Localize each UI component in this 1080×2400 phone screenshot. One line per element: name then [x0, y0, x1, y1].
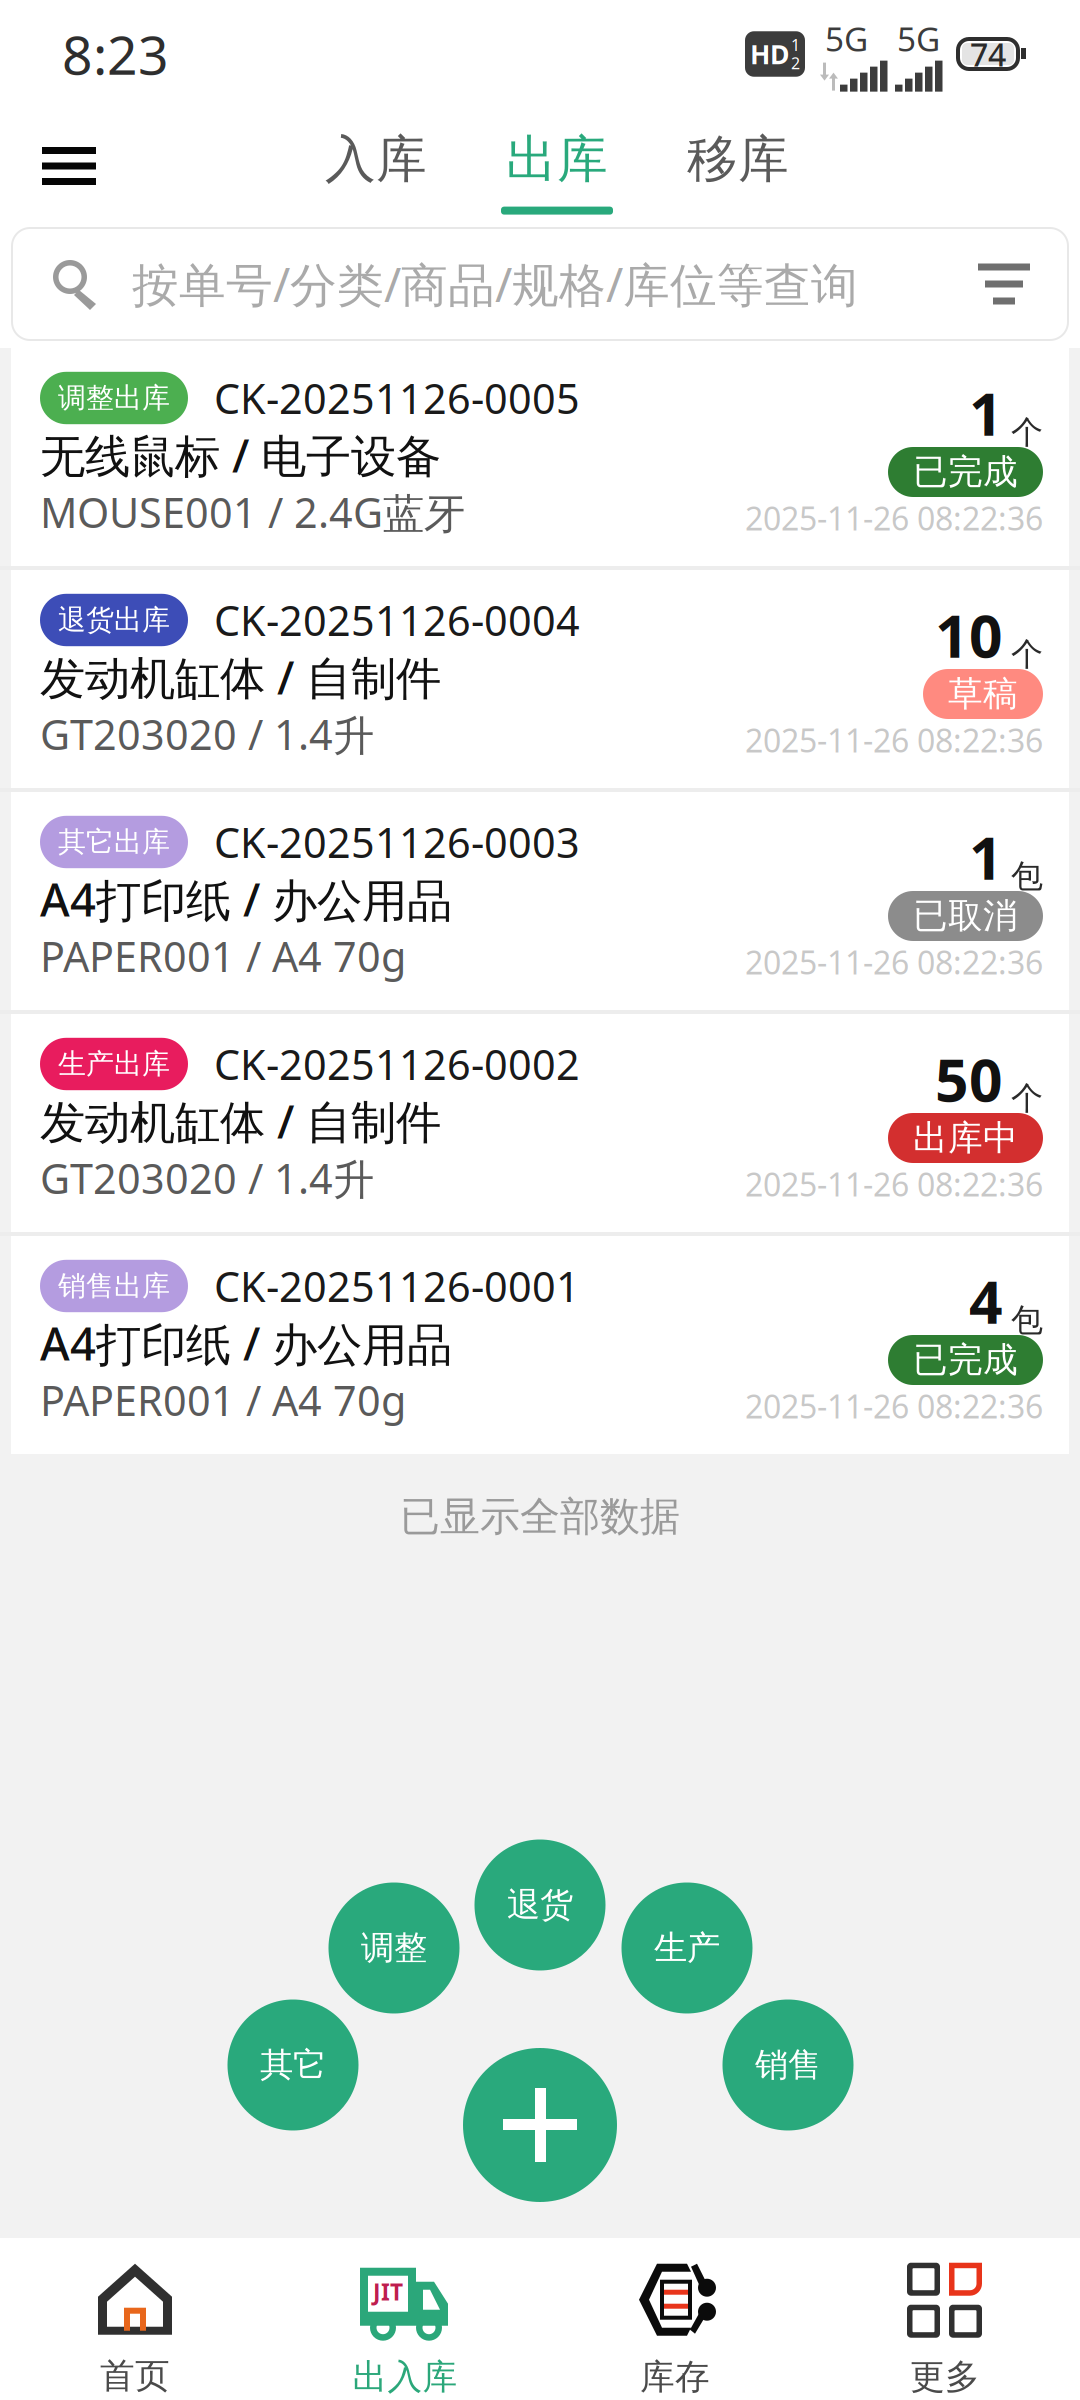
staticText: 1 — [969, 374, 1003, 452]
staticText: CK-20251126-0003 — [214, 815, 580, 869]
staticText: 1 — [791, 34, 800, 55]
staticText: 2025-11-26 08:22:36 — [745, 941, 1043, 983]
staticText: 调整 — [361, 1927, 427, 1968]
button[interactable]: Filter — [940, 230, 1068, 337]
staticText: 2025-11-26 08:22:36 — [745, 1385, 1043, 1427]
staticText: PAPER001 / A4 70g — [40, 1373, 406, 1427]
staticText: 调整出库 — [58, 381, 170, 415]
staticText: 发动机缸体 / 自制件 — [40, 647, 441, 707]
button[interactable]: 更多 — [810, 2240, 1080, 2398]
staticText: 退货 — [507, 1884, 573, 1925]
staticText: GT203020 / 1.4升 — [40, 706, 374, 761]
staticText: 生产 — [654, 1927, 720, 1968]
staticText: 草稿 — [948, 673, 1018, 715]
staticText: 出库 — [506, 128, 608, 191]
button[interactable]: 其它 — [227, 1999, 358, 2130]
staticText: 包 — [1011, 857, 1043, 896]
staticText: 已显示全部数据 — [400, 1492, 680, 1541]
button[interactable]: 生产出库 — [0, 1014, 1080, 1232]
button[interactable]: 库存 — [540, 2240, 810, 2398]
staticText: 个 — [1011, 1079, 1043, 1118]
button[interactable]: 其它出库 — [0, 792, 1080, 1010]
staticText: 移库 — [687, 128, 789, 191]
staticText: 已完成 — [913, 1339, 1018, 1381]
button[interactable]: 调整出库 — [0, 348, 1080, 566]
staticText: 个 — [1011, 635, 1043, 674]
staticText: 50 — [935, 1040, 1003, 1118]
staticText: HD — [750, 36, 790, 72]
staticText: 按单号/分类/商品/规格/库位等查询 — [132, 253, 858, 315]
staticText: PAPER001 / A4 70g — [40, 929, 406, 983]
button[interactable]: Add — [463, 2048, 617, 2202]
staticText: 4 — [969, 1262, 1003, 1340]
button[interactable]: 移库 — [646, 102, 830, 230]
staticText: CK-20251126-0005 — [214, 371, 580, 425]
button[interactable]: 销售出库 — [0, 1236, 1080, 1454]
button[interactable]: JIT — [270, 2240, 540, 2398]
staticText: 生产出库 — [58, 1047, 170, 1081]
button[interactable]: 退货 — [474, 1839, 605, 1970]
staticText: CK-20251126-0002 — [214, 1037, 580, 1091]
staticText: CK-20251126-0004 — [214, 593, 580, 647]
staticText: JIT — [373, 2277, 403, 2307]
staticText: 无线鼠标 / 电子设备 — [40, 425, 441, 485]
staticText: 74 — [970, 33, 1006, 75]
staticText: 已取消 — [913, 895, 1018, 937]
button[interactable]: 生产 — [621, 1882, 752, 2013]
staticText: 1 — [969, 818, 1003, 896]
staticText: 2025-11-26 08:22:36 — [745, 497, 1043, 539]
staticText: 入库 — [325, 128, 427, 191]
button[interactable]: 退货出库 — [0, 570, 1080, 788]
button[interactable]: 销售 — [722, 1999, 853, 2130]
staticText: 发动机缸体 / 自制件 — [40, 1091, 441, 1151]
button[interactable]: 首页 — [0, 2241, 270, 2397]
staticText: 个 — [1011, 413, 1043, 452]
button[interactable]: Menu — [0, 110, 136, 222]
staticText: 退货出库 — [58, 603, 170, 637]
staticText: 2 — [791, 52, 800, 74]
staticText: 5G — [825, 16, 868, 61]
button[interactable]: 入库 — [284, 102, 468, 230]
staticText: 5G — [897, 16, 940, 61]
staticText: CK-20251126-0001 — [214, 1259, 580, 1313]
staticText: 其它出库 — [58, 825, 170, 859]
staticText: 2025-11-26 08:22:36 — [745, 719, 1043, 761]
staticText: A4打印纸 / 办公用品 — [40, 1313, 452, 1373]
staticText: 首页 — [100, 2355, 170, 2397]
staticText: MOUSE001 / 2.4G蓝牙 — [40, 484, 465, 539]
staticText: 10 — [935, 596, 1003, 674]
staticText: 出库中 — [913, 1117, 1018, 1159]
staticText: 已完成 — [913, 451, 1018, 493]
staticText: 销售出库 — [58, 1269, 170, 1303]
staticText: A4打印纸 / 办公用品 — [40, 869, 452, 929]
button[interactable]: 出库 — [468, 102, 646, 230]
staticText: 库存 — [640, 2356, 710, 2398]
staticText: 销售 — [755, 2044, 821, 2085]
staticText: 2025-11-26 08:22:36 — [745, 1163, 1043, 1205]
staticText: 出入库 — [352, 2356, 457, 2398]
staticText: 8:23 — [62, 19, 169, 89]
staticText: 更多 — [910, 2356, 980, 2398]
staticText: 包 — [1011, 1301, 1043, 1340]
staticText: GT203020 / 1.4升 — [40, 1150, 374, 1205]
staticText: 其它 — [260, 2044, 326, 2085]
button[interactable]: 调整 — [328, 1882, 459, 2013]
